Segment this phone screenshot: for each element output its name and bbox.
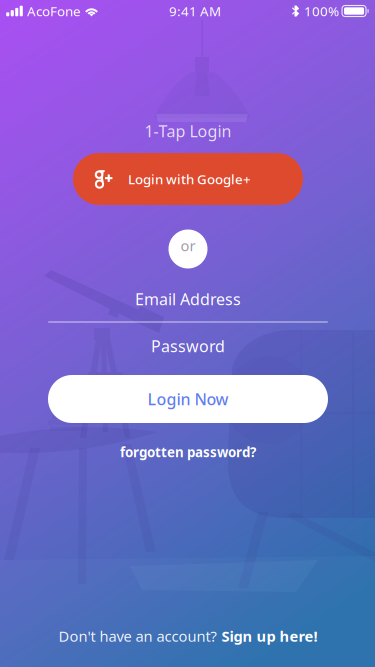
staticText: or <box>180 236 195 255</box>
staticText: AcoFone <box>27 2 81 20</box>
staticText: Email Address <box>135 288 241 310</box>
staticText: 9:41 AM <box>169 2 221 20</box>
staticText: Password <box>151 335 225 357</box>
staticText: 1-Tap Login <box>144 120 231 142</box>
staticText: 100% <box>304 2 339 20</box>
button[interactable]: or <box>168 229 207 268</box>
button[interactable]: Login Now <box>48 375 328 423</box>
staticText: Don't have an account? <box>58 626 216 646</box>
button[interactable]: Don't have an account? <box>58 626 317 646</box>
staticText: Sign up here! <box>221 626 317 646</box>
staticText: Login Now <box>147 388 228 410</box>
button[interactable]: forgotten password? <box>120 443 256 461</box>
staticText: forgotten password? <box>120 443 256 461</box>
staticText: Login with Google+ <box>128 170 251 188</box>
button[interactable]: Login with Google+ <box>73 153 303 205</box>
